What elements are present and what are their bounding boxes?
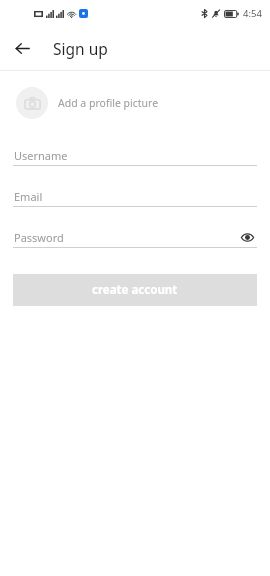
staticText: create account xyxy=(92,282,178,298)
staticText: Sign up xyxy=(53,38,108,59)
staticText: Password xyxy=(14,230,64,245)
staticText: Username xyxy=(14,148,68,163)
button[interactable]: Add a profile picture xyxy=(0,83,270,123)
staticText: Add a profile picture xyxy=(58,96,159,110)
button[interactable]: Back xyxy=(8,34,36,62)
staticText: Email xyxy=(14,189,43,204)
button[interactable]: Password xyxy=(13,227,257,248)
staticText: 4:54 xyxy=(243,7,262,20)
button[interactable]: Show password xyxy=(237,227,257,247)
button[interactable]: create account xyxy=(13,274,257,306)
button[interactable]: Username xyxy=(13,145,257,166)
button[interactable]: Email xyxy=(13,186,257,207)
